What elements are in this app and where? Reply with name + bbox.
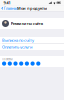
button[interactable]: Действие bbox=[30, 61, 35, 66]
button[interactable]: Действие bbox=[25, 61, 29, 66]
button[interactable]: Выписка по счёту bbox=[0, 37, 64, 43]
staticText: Реквизиты счёта bbox=[11, 21, 43, 26]
button[interactable]: Реквизиты счёта bbox=[0, 18, 64, 29]
button[interactable]: Действие bbox=[19, 61, 23, 66]
button[interactable]: Действие bbox=[2, 61, 6, 66]
staticText: Главная bbox=[4, 6, 18, 11]
staticText: Платежи bbox=[2, 57, 13, 61]
staticText: Оплатить услуги bbox=[2, 44, 32, 49]
staticText: 9:41 bbox=[3, 0, 10, 5]
button[interactable]: Главная bbox=[0, 5, 19, 11]
staticText: Выписка по счёту bbox=[2, 37, 34, 43]
button[interactable]: Действие bbox=[8, 61, 12, 66]
button[interactable]: Действие bbox=[13, 61, 18, 66]
button[interactable]: Оплатить услуги bbox=[0, 44, 64, 50]
staticText: Мои продукты bbox=[17, 6, 47, 11]
button[interactable]: Действие bbox=[36, 61, 40, 66]
